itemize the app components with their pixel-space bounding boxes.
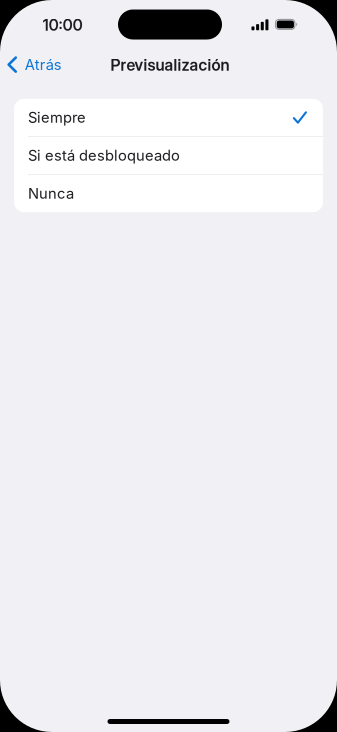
staticText: Nunca: [28, 185, 74, 202]
button[interactable]: Atrás: [0, 47, 72, 82]
staticText: Siempre: [28, 109, 86, 126]
staticText: Previsualización: [110, 55, 229, 75]
staticText: 10:00: [43, 16, 83, 34]
staticText: Atrás: [25, 56, 62, 73]
button[interactable]: Siempre: [14, 99, 323, 136]
button[interactable]: Si está desbloqueado: [14, 137, 323, 174]
button[interactable]: Nunca: [14, 175, 323, 212]
staticText: Si está desbloqueado: [28, 147, 180, 164]
